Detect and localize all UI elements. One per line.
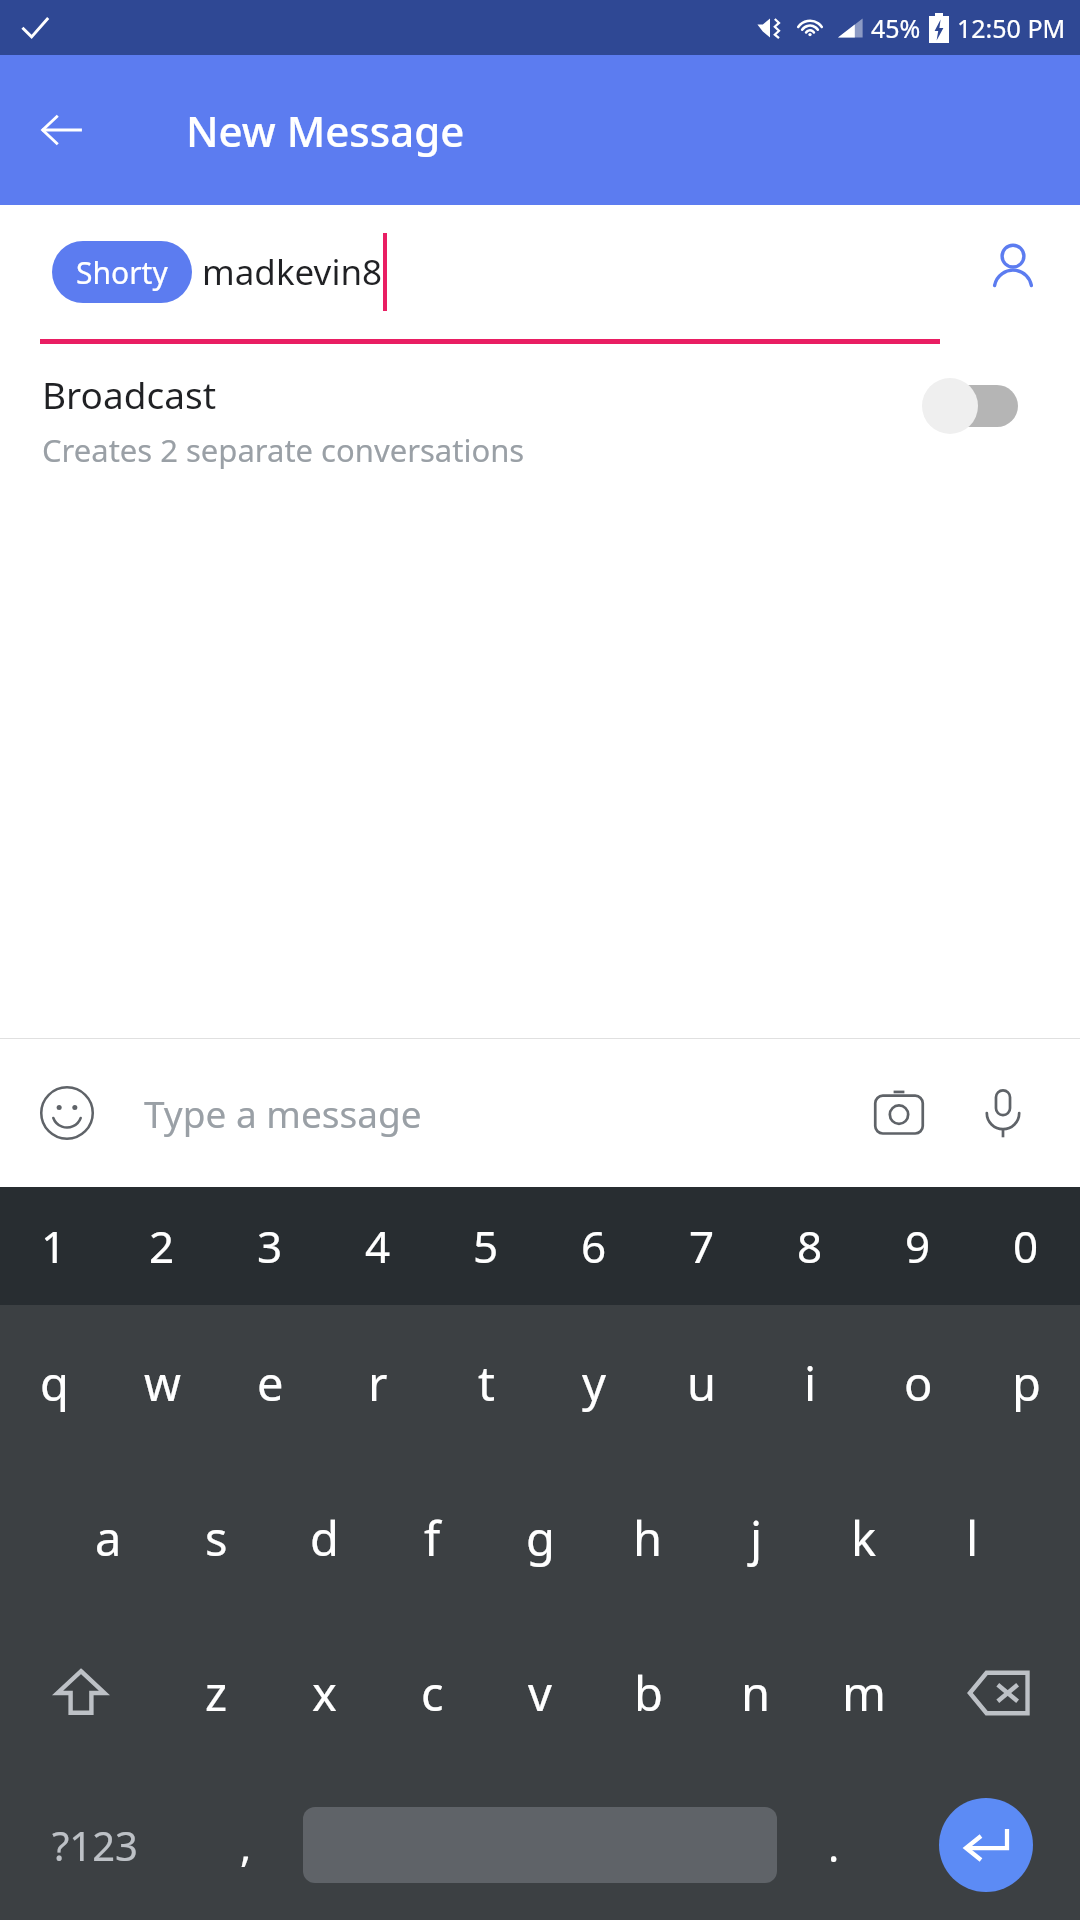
button[interactable]: 5 (432, 1187, 540, 1305)
staticText: Type a message (144, 1088, 422, 1138)
button[interactable]: 9 (864, 1187, 972, 1305)
staticText: 8 (797, 1216, 823, 1276)
staticText: c (421, 1661, 444, 1725)
button[interactable]: Broadcast toggle (922, 378, 1018, 434)
button[interactable]: Add contact (982, 235, 1044, 297)
staticText: Broadcast (42, 369, 217, 419)
button[interactable]: q (0, 1305, 108, 1460)
staticText: u (687, 1351, 717, 1415)
staticText: e (257, 1351, 284, 1415)
button[interactable]: Voice message (968, 1078, 1038, 1148)
staticText: 9 (905, 1216, 931, 1276)
staticText: New Message (186, 102, 465, 159)
staticText: x (312, 1661, 337, 1725)
button[interactable]: t (432, 1305, 540, 1460)
staticText: z (205, 1661, 228, 1725)
staticText: t (478, 1351, 495, 1415)
staticText: Shorty (76, 252, 168, 293)
button[interactable]: . (777, 1770, 891, 1920)
staticText: Creates 2 separate conversations (42, 429, 525, 471)
staticText: . (828, 1817, 840, 1874)
staticText: d (310, 1506, 339, 1570)
staticText: b (634, 1661, 663, 1725)
button[interactable]: h (594, 1460, 702, 1615)
button[interactable]: 4 (324, 1187, 432, 1305)
button[interactable]: Backspace (918, 1615, 1080, 1770)
staticText: h (633, 1506, 663, 1570)
button[interactable]: 3 (216, 1187, 324, 1305)
staticText: 3 (257, 1216, 283, 1276)
button[interactable]: c (378, 1615, 486, 1770)
button[interactable]: x (270, 1615, 378, 1770)
staticText: l (966, 1506, 979, 1570)
staticText: madkevin8 (202, 248, 383, 296)
staticText: n (741, 1661, 771, 1725)
button[interactable]: v (486, 1615, 594, 1770)
button[interactable]: 7 (648, 1187, 756, 1305)
staticText: 7 (689, 1216, 715, 1276)
button[interactable]: s (162, 1460, 270, 1615)
staticText: g (526, 1506, 555, 1570)
button[interactable]: f (378, 1460, 486, 1615)
staticText: , (240, 1817, 252, 1874)
staticText: y (582, 1351, 606, 1415)
staticText: m (842, 1661, 886, 1725)
button[interactable]: Shift (0, 1615, 162, 1770)
button[interactable]: b (594, 1615, 702, 1770)
staticText: ?123 (52, 1818, 138, 1872)
button[interactable]: k (810, 1460, 918, 1615)
staticText: s (205, 1506, 228, 1570)
staticText: o (904, 1351, 933, 1415)
staticText: 4 (365, 1216, 391, 1276)
staticText: a (95, 1506, 122, 1570)
staticText: 45% (871, 11, 921, 45)
button[interactable]: Space (303, 1770, 777, 1920)
staticText: w (144, 1351, 181, 1415)
staticText: j (750, 1506, 763, 1570)
button[interactable]: Enter (891, 1770, 1080, 1920)
button[interactable]: Camera (864, 1078, 934, 1148)
button[interactable]: y (540, 1305, 648, 1460)
button[interactable]: i (756, 1305, 864, 1460)
button[interactable]: ?123 (0, 1770, 189, 1920)
staticText: q (40, 1351, 69, 1415)
button[interactable]: r (324, 1305, 432, 1460)
button[interactable]: e (216, 1305, 324, 1460)
staticText: r (368, 1351, 388, 1415)
button[interactable]: 0 (972, 1187, 1080, 1305)
staticText: k (851, 1506, 877, 1570)
staticText: i (804, 1351, 817, 1415)
staticText: v (528, 1661, 552, 1725)
button[interactable]: Shorty (52, 241, 192, 303)
button[interactable]: n (702, 1615, 810, 1770)
button[interactable]: z (162, 1615, 270, 1770)
staticText: 12:50 PM (957, 11, 1066, 45)
button[interactable]: , (189, 1770, 303, 1920)
staticText: p (1012, 1351, 1041, 1415)
button[interactable]: d (270, 1460, 378, 1615)
button[interactable]: Broadcast (0, 355, 1080, 485)
staticText: 1 (41, 1216, 67, 1276)
staticText: f (424, 1506, 441, 1570)
staticText: 5 (473, 1216, 499, 1276)
button[interactable]: u (648, 1305, 756, 1460)
button[interactable]: 2 (108, 1187, 216, 1305)
button[interactable]: a (54, 1460, 162, 1615)
button[interactable]: m (810, 1615, 918, 1770)
button[interactable]: l (918, 1460, 1026, 1615)
button[interactable]: 1 (0, 1187, 108, 1305)
staticText: 0 (1013, 1216, 1039, 1276)
button[interactable]: 8 (756, 1187, 864, 1305)
button[interactable]: w (108, 1305, 216, 1460)
staticText: 6 (581, 1216, 607, 1276)
button[interactable]: 6 (540, 1187, 648, 1305)
button[interactable]: j (702, 1460, 810, 1615)
button[interactable]: g (486, 1460, 594, 1615)
button[interactable]: Back (30, 98, 94, 162)
button[interactable]: Emoji (36, 1082, 98, 1144)
staticText: 2 (149, 1216, 175, 1276)
button[interactable]: o (864, 1305, 972, 1460)
button[interactable]: p (972, 1305, 1080, 1460)
